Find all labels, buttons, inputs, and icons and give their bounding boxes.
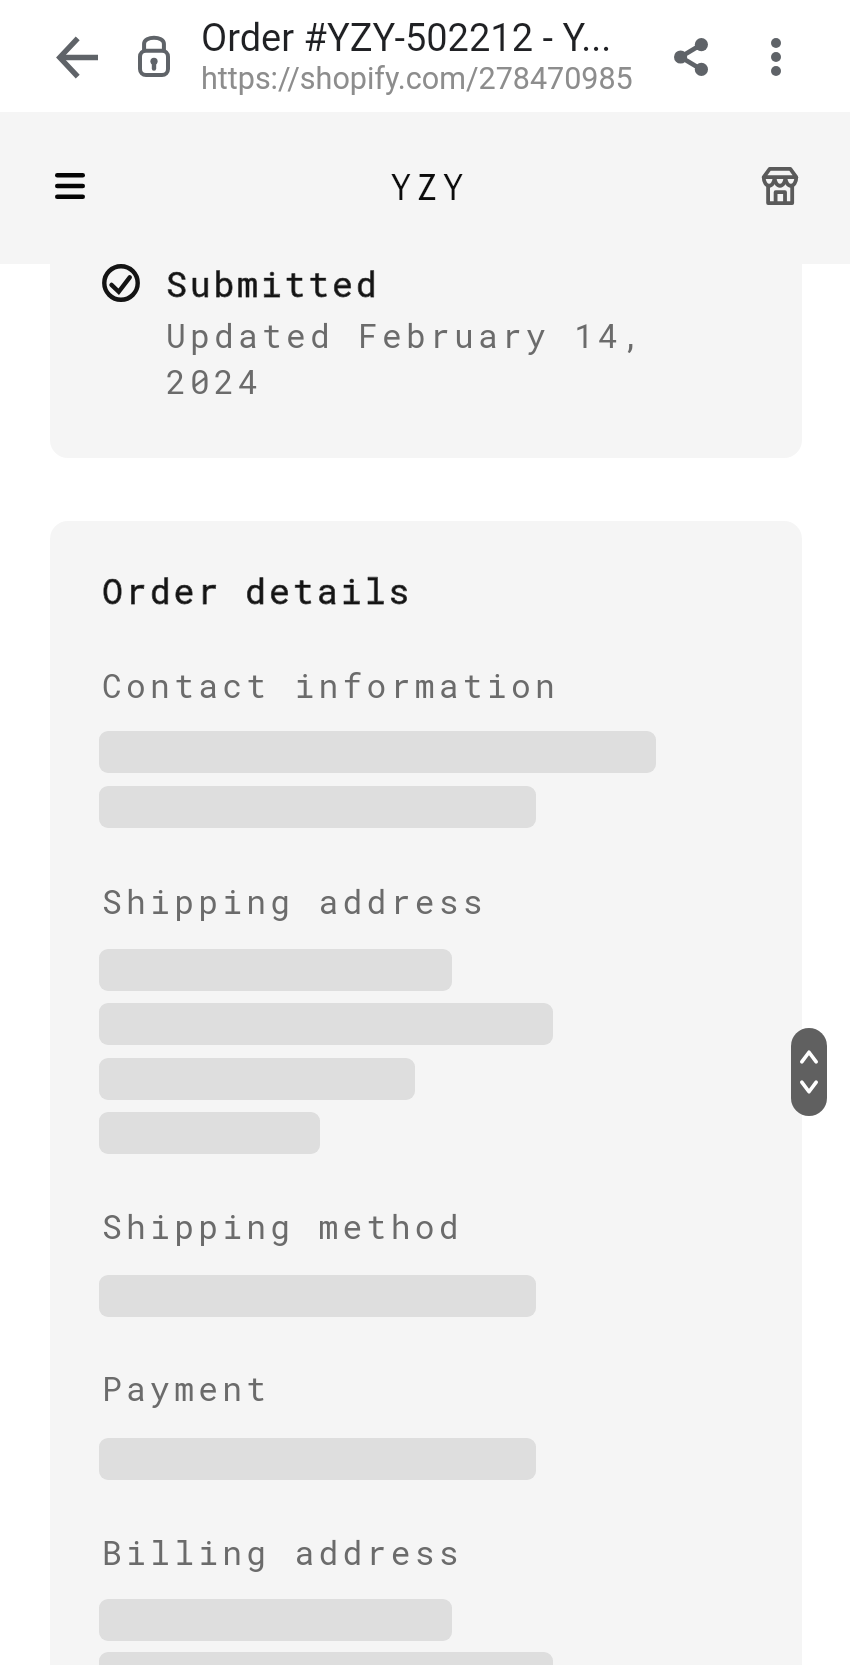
staticText: Order details: [102, 567, 413, 613]
button[interactable]: Store: [761, 167, 799, 205]
staticText: Updated February 14, 2024: [166, 313, 666, 403]
button[interactable]: Menu: [55, 173, 85, 199]
staticText: Shipping method: [102, 1204, 463, 1248]
staticText: Payment: [102, 1366, 271, 1410]
staticText: Order #YZY-502212 - Y...: [201, 16, 612, 61]
staticText: https://shopify.com/278470985: [201, 61, 633, 97]
staticText: Submitted: [166, 260, 380, 306]
button[interactable]: Scroll: [791, 1028, 827, 1116]
staticText: Shipping address: [102, 879, 487, 923]
staticText: Contact information: [102, 663, 560, 707]
button[interactable]: Back: [53, 32, 103, 82]
staticText: YZY: [391, 163, 471, 211]
button[interactable]: More options: [751, 32, 801, 82]
staticText: Billing address: [102, 1530, 463, 1574]
staticText: Order details: [102, 567, 413, 613]
button[interactable]: Share: [666, 32, 716, 82]
staticText: Submitted: [166, 260, 380, 306]
